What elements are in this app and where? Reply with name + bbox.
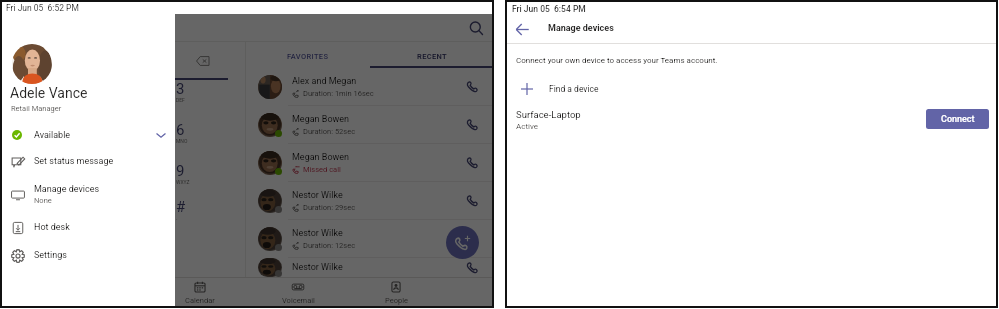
staticText: Nestor Wilke [292, 190, 343, 201]
staticText: Fri Jun 05 6:54 PM [512, 4, 586, 14]
staticText: None [34, 196, 52, 205]
staticText: Fri Jun 05 6:52 PM [6, 3, 79, 13]
button[interactable]: New call [446, 226, 479, 259]
staticText: Duration: 52sec [303, 127, 356, 136]
button[interactable]: Settings [0, 243, 175, 268]
button[interactable]: Call back [457, 224, 487, 254]
button[interactable]: People [347, 278, 445, 308]
button[interactable]: Search [464, 16, 488, 40]
staticText: Set status message [34, 156, 114, 167]
staticText: Alex and Megan [292, 76, 357, 87]
staticText: Duration: 1min 16sec [303, 89, 374, 98]
staticText: Adele Vance [10, 85, 88, 101]
staticText: People [385, 296, 408, 305]
staticText: Surface-Laptop [516, 109, 581, 120]
staticText: FAVORITES [287, 52, 329, 61]
button[interactable]: Nestor Wilke [246, 182, 494, 219]
staticText: Megan Bowen [292, 114, 350, 125]
staticText: Connect [941, 114, 975, 125]
button[interactable]: Call back [457, 148, 487, 178]
button[interactable]: Megan Bowen [246, 144, 494, 181]
staticText: DEF [176, 97, 185, 103]
button[interactable]: Nestor Wilke [246, 220, 494, 257]
staticText: Duration: 12sec [303, 241, 356, 250]
staticText: Connect your own device to access your T… [516, 56, 718, 65]
staticText: Settings [34, 250, 67, 261]
button[interactable]: RECENT [370, 42, 494, 66]
staticText: Available [34, 130, 71, 141]
button[interactable]: Calendar [151, 278, 249, 308]
staticText: Duration: 29sec [303, 203, 356, 212]
staticText: 6 [176, 121, 185, 139]
button[interactable]: Back [510, 17, 534, 41]
staticText: Manage devices [34, 184, 100, 195]
other: Backspace [196, 56, 210, 66]
staticText: Retail Manager [11, 104, 62, 113]
button[interactable]: Find a device [505, 78, 998, 100]
button[interactable]: Call back [457, 258, 487, 277]
staticText: Manage devices [548, 23, 614, 34]
button[interactable]: Voicemail [249, 278, 347, 308]
staticText: Megan Bowen [292, 152, 350, 163]
button[interactable]: Nestor Wilke [246, 258, 494, 277]
staticText: Active [516, 122, 539, 131]
staticText: Voicemail [282, 296, 315, 305]
button[interactable]: Call back [457, 72, 487, 102]
staticText: WXYZ [176, 179, 190, 185]
staticText: MNO [176, 138, 188, 144]
staticText: 3 [176, 80, 185, 98]
button[interactable]: Available [0, 122, 175, 148]
button[interactable]: Call back [457, 110, 487, 140]
button[interactable]: Hot desk [0, 215, 175, 240]
staticText: 9 [176, 162, 185, 180]
button[interactable]: Connect [926, 109, 989, 129]
button[interactable]: FAVORITES [246, 42, 370, 66]
staticText: Find a device [549, 84, 599, 94]
staticText: Hot desk [34, 222, 70, 233]
staticText: Nestor Wilke [292, 262, 343, 273]
staticText: # [176, 198, 186, 216]
staticText: Calendar [185, 296, 215, 305]
staticText: Nestor Wilke [292, 228, 343, 239]
button[interactable]: Megan Bowen [246, 106, 494, 143]
button[interactable]: Set status message [0, 149, 175, 174]
staticText: . [176, 215, 178, 221]
button[interactable]: Call back [457, 186, 487, 216]
staticText: RECENT [417, 52, 448, 61]
button[interactable]: Alex and Megan [246, 68, 494, 105]
button[interactable]: Manage devices [0, 182, 175, 207]
staticText: Missed call [303, 165, 341, 174]
